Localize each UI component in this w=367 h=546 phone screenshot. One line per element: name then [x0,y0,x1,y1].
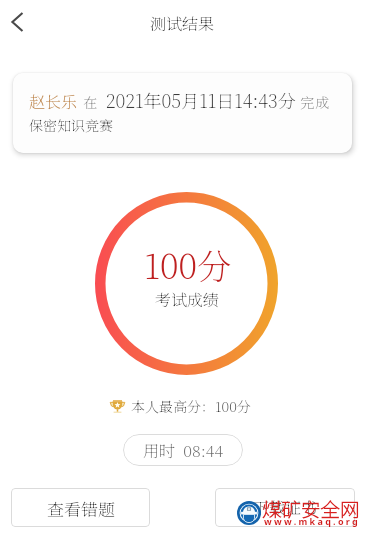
staticText: www.mkaq.org [264,515,361,527]
staticText: 考试成绩 [155,288,220,311]
staticText: 测试结果 [150,12,215,35]
button[interactable]: 赵长乐 在 2021年05月11日14:43分 完成 [13,73,352,153]
staticText: 煤矿安全网 [262,494,360,522]
staticText: 保密知识竞赛 [29,115,113,135]
staticText: 本人最高分：100分 [131,396,251,416]
staticText: 下载证书 [253,496,318,519]
staticText: 用时 08:44 [143,439,224,462]
staticText: 查看错题 [47,496,115,520]
staticText: 赵长乐 在 2021年05月11日14:43分 完成 [29,87,331,113]
button[interactable]: 下载证书 [215,488,355,527]
button[interactable]: 查看错题 [11,488,150,527]
button[interactable]: 用时 08:44 [123,434,243,466]
button[interactable]: Back [0,0,41,44]
staticText: 100分 [144,240,231,289]
